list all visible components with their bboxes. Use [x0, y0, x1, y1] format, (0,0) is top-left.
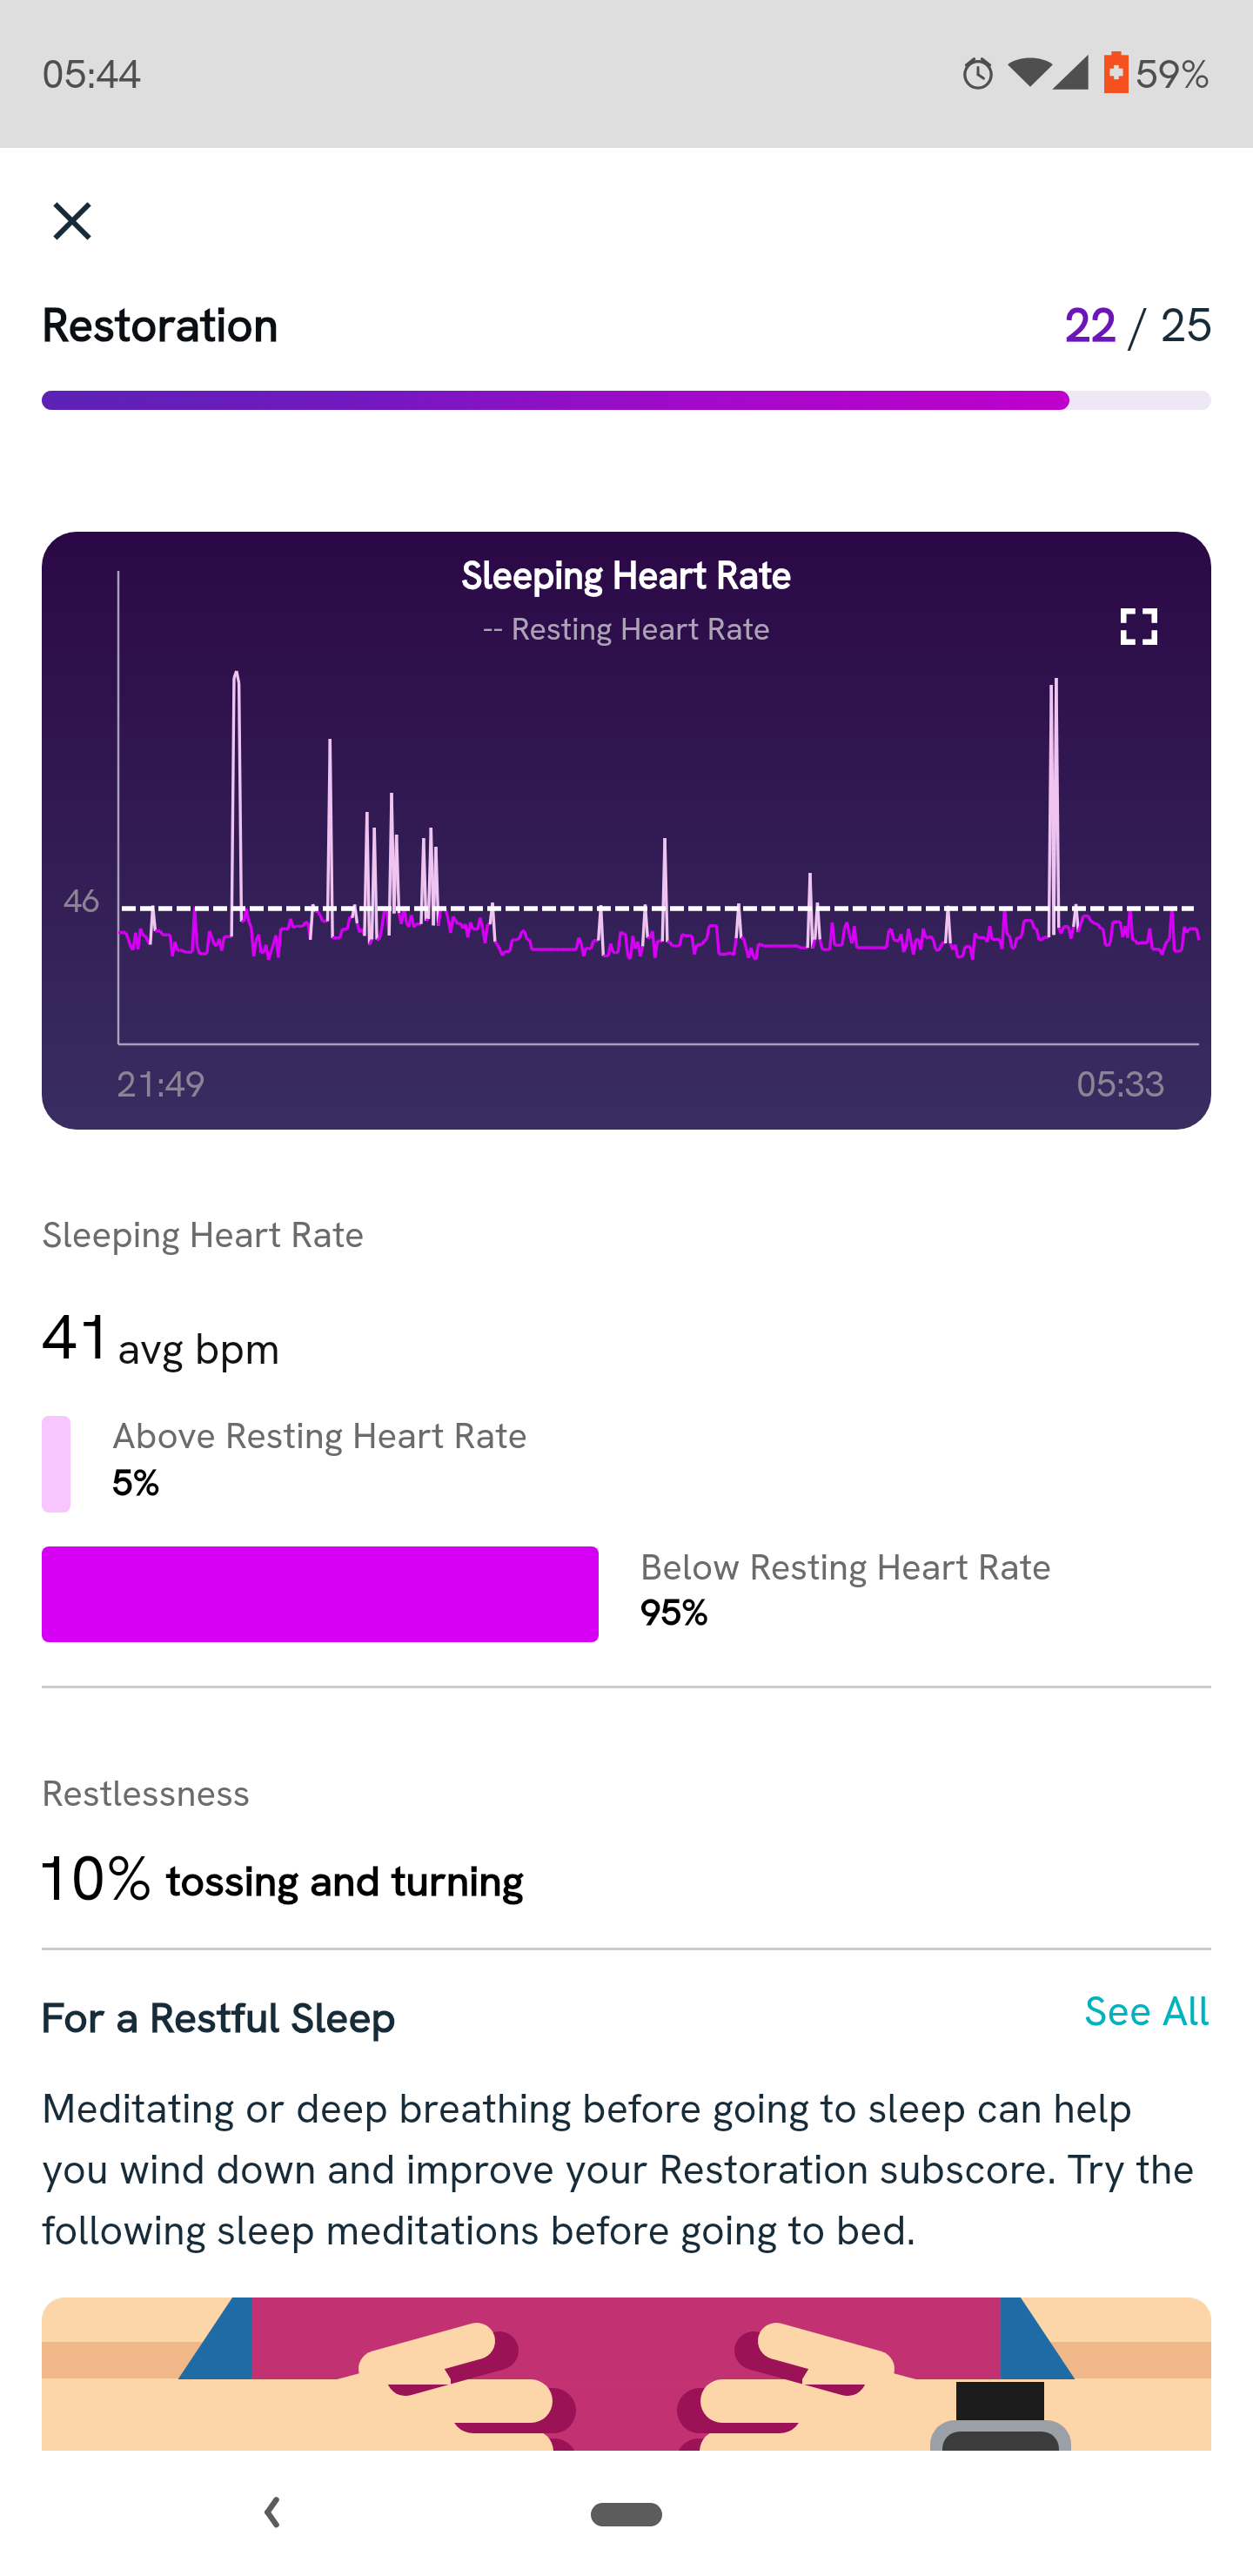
button[interactable]: Close [24, 173, 120, 269]
staticText: 22 [1065, 295, 1117, 355]
staticText: / 25 [1117, 295, 1213, 355]
staticText: For a Restful Sleep [41, 1989, 397, 2044]
staticText: Sleeping Heart Rate [42, 1211, 365, 1258]
staticText: 46 [64, 879, 101, 922]
staticText: Sleeping Heart Rate [42, 551, 1211, 600]
staticText: tossing and turning [166, 1853, 524, 1908]
staticText: avg bpm [117, 1321, 280, 1377]
staticText: 21:49 [117, 1061, 205, 1107]
staticText: Restlessness [42, 1769, 251, 1817]
staticText: 05:33 [1076, 1061, 1165, 1107]
button[interactable]: See All [1074, 1979, 1209, 2042]
button[interactable]: Sleep meditation [42, 2298, 1211, 2451]
button[interactable]: Back [224, 2476, 308, 2559]
staticText: -- Resting Heart Rate [42, 608, 1211, 649]
staticText: See All [1084, 1984, 1209, 2037]
staticText: Restoration [42, 295, 278, 355]
staticText: 5% [112, 1459, 160, 1506]
staticText: Below Resting Heart Rate [640, 1543, 1052, 1591]
button[interactable]: Expand chart [1104, 592, 1174, 661]
staticText: 10% [36, 1837, 153, 1919]
staticText: 95% [640, 1588, 709, 1636]
staticText: 59% [1136, 48, 1210, 100]
staticText: 05:44 [42, 48, 142, 100]
staticText: Meditating or deep breathing before goin… [42, 2082, 1225, 2257]
staticText: 41 [42, 1296, 112, 1378]
staticText: Above Resting Heart Rate [112, 1412, 528, 1459]
button[interactable]: Home [591, 2503, 662, 2526]
